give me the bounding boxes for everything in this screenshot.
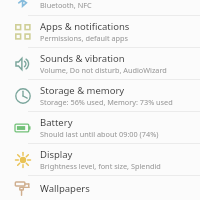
other: Battery [14, 119, 32, 137]
staticText: Should last until about 09:00 (74%) [40, 129, 159, 139]
other: Wallpapers [14, 179, 32, 197]
staticText: Storage & memory [40, 84, 125, 97]
staticText: Storage: 56% used, Memory: 73% used [40, 97, 173, 107]
other: Sounds and vibration [14, 55, 32, 73]
staticText: Brightness level, font size, Splendid [40, 161, 161, 171]
button[interactable]: Display [0, 144, 200, 175]
other: Connections [14, 0, 32, 7]
other: Display [14, 151, 32, 169]
staticText: Bluetooth, NFC [40, 0, 92, 10]
button[interactable]: Storage and memory [0, 80, 200, 111]
button[interactable]: Connections [0, 0, 200, 15]
staticText: Display [40, 148, 73, 161]
button[interactable]: Apps and notifications [0, 16, 200, 47]
button[interactable]: Battery [0, 112, 200, 143]
other: Storage and memory [14, 87, 32, 105]
staticText: Sounds & vibration [40, 52, 125, 65]
staticText: Apps & notifications [40, 20, 130, 33]
button[interactable]: Sounds and vibration [0, 48, 200, 79]
button[interactable]: Wallpapers [0, 176, 200, 200]
staticText: Permissions, default apps [40, 33, 129, 43]
staticText: Volume, Do not disturb, AudioWizard [40, 65, 167, 75]
staticText: Wallpapers [40, 182, 90, 195]
other: Apps and notifications [14, 23, 32, 41]
staticText: Battery [40, 116, 73, 129]
